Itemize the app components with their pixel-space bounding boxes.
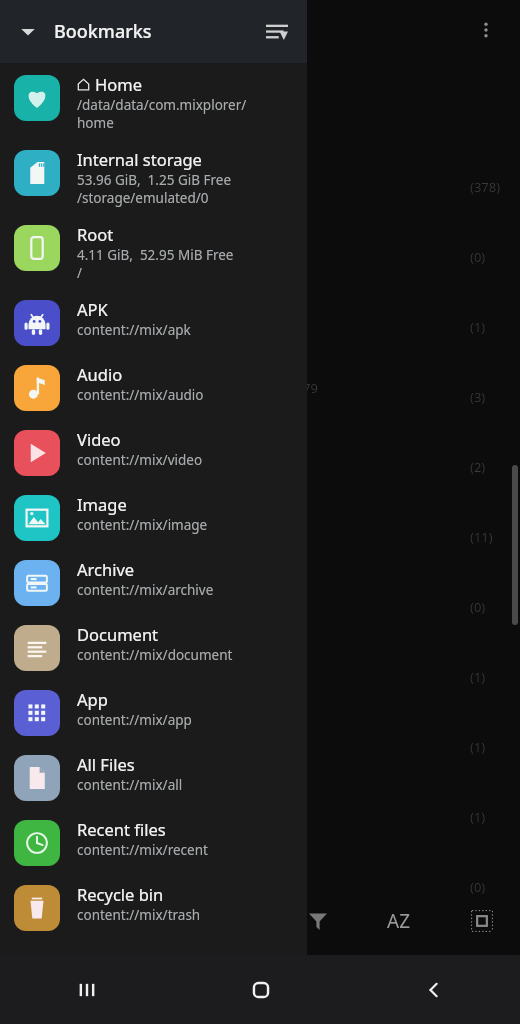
staticText: (1) [470, 738, 486, 756]
staticText: content://mix/image [77, 516, 208, 534]
staticText: content://mix/trash [77, 906, 201, 924]
staticText: content://mix/app [77, 711, 192, 729]
button[interactable]: Home [0, 67, 307, 142]
staticText: content://mix/apk [77, 321, 191, 339]
staticText: Recycle bin [77, 883, 164, 905]
button[interactable]: Video [0, 422, 307, 487]
button[interactable]: Filter [296, 899, 340, 943]
staticText: Image [77, 493, 127, 515]
staticText: App [77, 688, 108, 710]
staticText: APK [77, 298, 108, 320]
staticText: home [77, 114, 114, 132]
button[interactable]: Collapse bookmarks [12, 16, 44, 48]
button[interactable]: Select all [458, 897, 506, 945]
staticText: content://mix/document [77, 646, 233, 664]
staticText: (11) [470, 528, 493, 546]
staticText: All Files [77, 753, 135, 775]
staticText: Document [77, 623, 159, 645]
staticText: Home [95, 73, 142, 95]
staticText: content://mix/all [77, 776, 183, 794]
button[interactable]: Audio [0, 357, 307, 422]
staticText: (1) [470, 668, 486, 686]
button[interactable]: Home [174, 955, 347, 1024]
staticText: Audio [77, 363, 123, 385]
staticText: 53.96 GiB, 1.25 GiB Free [77, 171, 232, 189]
button[interactable]: Image [0, 487, 307, 552]
staticText: content://mix/recent [77, 841, 208, 859]
staticText: (2) [470, 458, 486, 476]
staticText: Recent files [77, 818, 166, 840]
staticText: Archive [77, 558, 135, 580]
staticText: 4.11 GiB, 52.95 MiB Free [77, 246, 234, 264]
button[interactable]: Recent apps [0, 955, 174, 1024]
button[interactable]: Internal storage [0, 142, 307, 217]
staticText: (0) [470, 878, 486, 896]
button[interactable]: Archive [0, 552, 307, 617]
staticText: Internal storage [77, 148, 202, 170]
staticText: (3) [470, 388, 486, 406]
staticText: (378) [470, 178, 501, 196]
button[interactable]: Recent files [0, 812, 307, 877]
staticText: (1) [470, 318, 486, 336]
button[interactable]: Root [0, 217, 307, 292]
staticText: /data/data/com.mixplorer/ [77, 96, 247, 114]
staticText: Root [77, 223, 114, 245]
button[interactable]: APK [0, 292, 307, 357]
button[interactable]: Recycle bin [0, 877, 307, 942]
button[interactable]: More options [466, 10, 506, 50]
button[interactable]: Back [347, 955, 520, 1024]
staticText: (0) [470, 598, 486, 616]
staticText: /storage/emulated/0 [77, 189, 209, 207]
staticText: Video [77, 428, 121, 450]
staticText: (1) [470, 808, 486, 826]
staticText: AZ [387, 908, 411, 934]
button[interactable]: App [0, 682, 307, 747]
button[interactable]: AZ [371, 893, 427, 949]
staticText: (0) [470, 248, 486, 266]
button[interactable]: All Files [0, 747, 307, 812]
staticText: 79 [303, 379, 318, 397]
staticText: content://mix/video [77, 451, 203, 469]
button[interactable]: Sort [255, 10, 299, 54]
staticText: Bookmarks [54, 19, 152, 44]
button[interactable]: Document [0, 617, 307, 682]
staticText: content://mix/audio [77, 386, 204, 404]
staticText: / [77, 264, 83, 282]
staticText: content://mix/archive [77, 581, 214, 599]
button[interactable]: Collapse bookmarks [0, 0, 307, 63]
